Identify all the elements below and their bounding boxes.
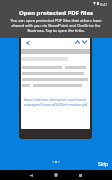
staticText: You can open protected PDF files that ot… bbox=[7, 18, 105, 33]
staticText: Open protected PDF files bbox=[0, 9, 112, 17]
button[interactable]: Home bbox=[47, 170, 64, 180]
staticText: managers/Financial%20Information.pdf bbox=[24, 102, 88, 107]
staticText: https://contoso.sharepoint.com/teams/ bbox=[24, 97, 87, 102]
button[interactable]: Recents bbox=[72, 170, 89, 180]
staticText: Skip bbox=[98, 161, 108, 168]
button[interactable]: Skip bbox=[93, 157, 112, 172]
staticText: 9:41 bbox=[100, 2, 108, 7]
button[interactable]: Back bbox=[22, 170, 39, 180]
button[interactable]: Back bbox=[25, 40, 30, 45]
button[interactable]: https://contoso.sharepoint.com/teams/ bbox=[24, 97, 88, 107]
